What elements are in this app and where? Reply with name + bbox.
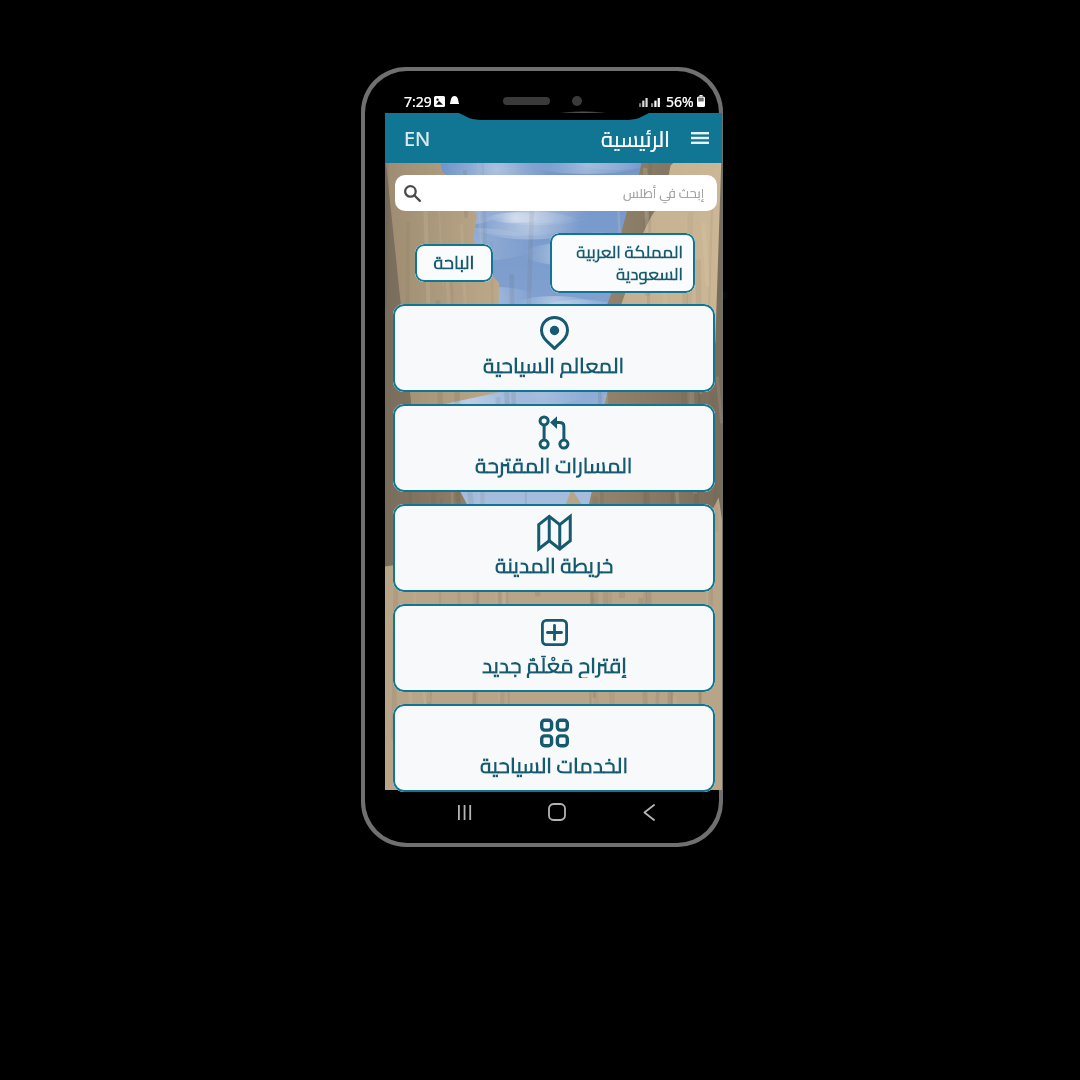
button[interactable]: خريطة المدينة [393,504,715,592]
staticText: الباحة [423,246,485,280]
button[interactable]: Home [543,798,571,826]
staticText: 56% [666,92,694,111]
staticText: المملكة العربية السعودية [562,236,683,290]
button[interactable]: الخدمات السياحية [393,704,715,792]
button[interactable]: Back [635,798,663,826]
button[interactable]: Menu [685,123,715,153]
button[interactable]: الباحة [415,244,493,282]
staticText: المسارات المقترحة [475,446,633,478]
button[interactable]: المعالم السياحية [393,304,715,392]
staticText: الخدمات السياحية [480,746,629,778]
staticText: الرئيسية [601,118,671,159]
staticText: إبحث في أطلس [623,181,705,205]
staticText: المعالم السياحية [483,346,625,378]
button[interactable]: المملكة العربية السعودية [550,233,695,293]
staticText: EN [404,125,431,152]
staticText: إقتراح مَعْلَمٌ جديد [482,646,627,678]
button[interactable]: EN [401,119,434,158]
button[interactable]: إقتراح مَعْلَمٌ جديد [393,604,715,692]
button[interactable]: Recent apps [450,798,478,826]
button[interactable]: المسارات المقترحة [393,404,715,492]
staticText: خريطة المدينة [495,546,614,578]
staticText: 7:29 [404,92,432,111]
button[interactable]: إبحث في أطلس [395,175,717,211]
